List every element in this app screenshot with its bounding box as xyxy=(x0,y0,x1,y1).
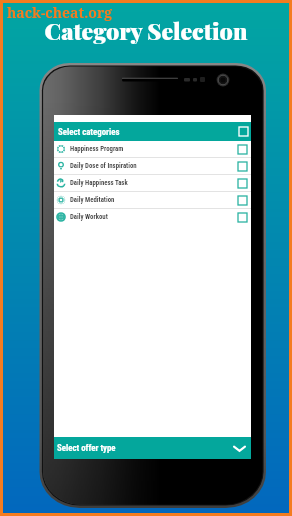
button[interactable]: Select categories xyxy=(54,122,251,141)
staticText: Happiness Program xyxy=(70,145,238,153)
staticText: Select offer type xyxy=(57,443,234,453)
button[interactable]: Select Happiness Program xyxy=(238,145,247,154)
staticText: hack-cheat.org xyxy=(7,3,113,22)
button[interactable]: Happiness Program xyxy=(54,141,251,157)
button[interactable]: Daily Happiness Task xyxy=(54,175,251,191)
button[interactable]: Daily Dose of Inspiration xyxy=(54,158,251,174)
other: Expand offer type xyxy=(234,443,245,454)
staticText: Select categories xyxy=(58,127,239,137)
button[interactable]: Select all categories xyxy=(239,127,248,136)
staticText: Daily Dose of Inspiration xyxy=(70,162,238,170)
button[interactable]: Select Daily Happiness Task xyxy=(238,179,247,188)
button[interactable]: Daily Meditation xyxy=(54,192,251,208)
staticText: Daily Happiness Task xyxy=(70,179,238,187)
button[interactable]: Daily Workout xyxy=(54,209,251,225)
staticText: Daily Meditation xyxy=(70,196,238,204)
button[interactable]: Select offer type xyxy=(54,437,251,459)
staticText: Daily Workout xyxy=(70,213,238,221)
button[interactable]: Select Daily Meditation xyxy=(238,196,247,205)
button[interactable]: Select Daily Workout xyxy=(238,213,247,222)
staticText: Category Selection xyxy=(0,15,292,46)
button[interactable]: Select Daily Dose of Inspiration xyxy=(238,162,247,171)
